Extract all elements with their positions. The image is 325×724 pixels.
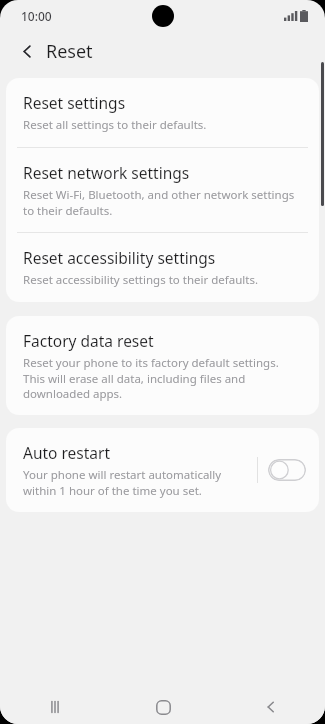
staticText: Reset accessibility settings (23, 247, 216, 268)
button[interactable]: Recent apps (0, 690, 109, 724)
button[interactable]: Auto restart toggle (268, 459, 306, 481)
staticText: 10:00 (21, 8, 52, 24)
button[interactable]: Back (217, 690, 325, 724)
button[interactable]: Reset accessibility settings (6, 233, 319, 302)
staticText: Reset your phone to its factory default … (23, 355, 302, 401)
staticText: Your phone will restart automatically wi… (23, 467, 249, 498)
button[interactable]: Back (10, 34, 44, 68)
button[interactable]: Reset network settings (6, 148, 319, 232)
staticText: Factory data reset (23, 330, 154, 351)
staticText: Reset accessibility settings to their de… (23, 272, 258, 288)
button[interactable]: Reset settings (6, 78, 319, 147)
staticText: Reset network settings (23, 162, 190, 183)
button[interactable]: Home (109, 690, 217, 724)
staticText: Reset settings (23, 92, 126, 113)
staticText: Auto restart (23, 442, 111, 463)
button[interactable]: Factory data reset (6, 316, 319, 415)
button[interactable]: Auto restart (6, 428, 319, 512)
staticText: Reset all settings to their defaults. (23, 117, 207, 133)
staticText: Reset Wi-Fi, Bluetooth, and other networ… (23, 187, 302, 218)
staticText: Reset (46, 39, 93, 64)
